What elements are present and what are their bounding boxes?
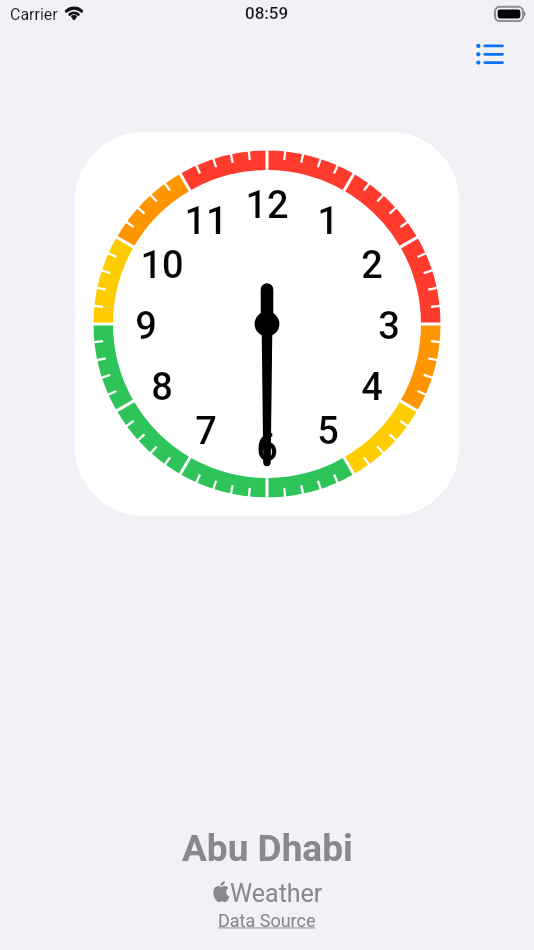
staticText: 5 <box>317 409 339 454</box>
staticText: Weather <box>230 879 323 908</box>
button[interactable]: 1 <box>75 132 459 516</box>
staticText: 8 <box>151 365 173 410</box>
staticText: 7 <box>195 409 217 454</box>
staticText: 6 <box>256 426 278 471</box>
staticText: Abu Dhabi <box>182 827 353 870</box>
staticText: 11 <box>184 199 228 244</box>
staticText: 3 <box>378 304 400 349</box>
staticText: 2 <box>361 243 383 288</box>
staticText: 12 <box>245 183 289 228</box>
button[interactable]: Menu <box>467 24 511 68</box>
button[interactable]: Data Source <box>218 910 316 931</box>
staticText: 4 <box>361 365 383 410</box>
staticText: 1 <box>317 199 339 244</box>
staticText: 10 <box>140 243 184 288</box>
staticText: Carrier <box>10 5 58 24</box>
staticText: 08:59 <box>245 3 289 23</box>
staticText: 9 <box>135 304 157 349</box>
staticText: Data Source <box>218 910 316 931</box>
